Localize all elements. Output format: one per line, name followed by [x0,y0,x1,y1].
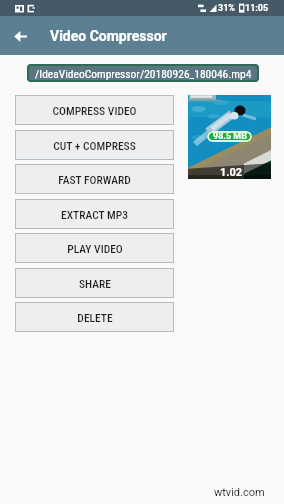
button[interactable]: /IdeaVideoCompressor/20180926_180046.mp4 [27,64,259,82]
button[interactable]: DELETE [15,302,174,332]
staticText: 98.5 MB [213,131,247,142]
button[interactable]: EXTRACT MP3 [15,199,174,229]
button[interactable]: CUT + COMPRESS [15,130,174,160]
staticText: wtvid.com [214,486,265,499]
staticText: PLAY VIDEO [67,242,123,255]
staticText: DELETE [77,311,113,324]
staticText: CUT + COMPRESS [53,139,136,152]
staticText: 1.02 [220,166,243,179]
button[interactable]: Back [9,24,33,48]
button[interactable]: FAST FORWARD [15,164,174,194]
staticText: SHARE [79,277,111,290]
button[interactable]: PLAY VIDEO [15,233,174,263]
staticText: 11:05 [245,3,269,14]
staticText: COMPRESS VIDEO [52,104,137,117]
staticText: EXTRACT MP3 [61,208,128,221]
button[interactable]: SHARE [15,268,174,298]
staticText: 31% [218,3,235,14]
staticText: FAST FORWARD [58,173,131,186]
staticText: Video Compressor [50,28,167,44]
staticText: /IdeaVideoCompressor/20180926_180046.mp4 [35,67,252,80]
button[interactable]: COMPRESS VIDEO [15,95,174,125]
